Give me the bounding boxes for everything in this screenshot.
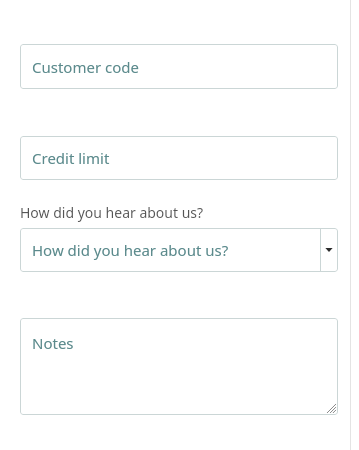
button[interactable]: How did you hear about us? dropdown bbox=[20, 228, 338, 272]
button[interactable]: Customer code bbox=[20, 44, 338, 89]
button[interactable]: Credit limit bbox=[20, 136, 338, 180]
staticText: How did you hear about us? bbox=[32, 240, 229, 260]
staticText: How did you hear about us? bbox=[20, 203, 204, 222]
staticText: Credit limit bbox=[32, 148, 110, 168]
button[interactable]: Notes bbox=[20, 318, 338, 415]
staticText: Notes bbox=[32, 333, 74, 353]
staticText: Customer code bbox=[32, 57, 139, 77]
